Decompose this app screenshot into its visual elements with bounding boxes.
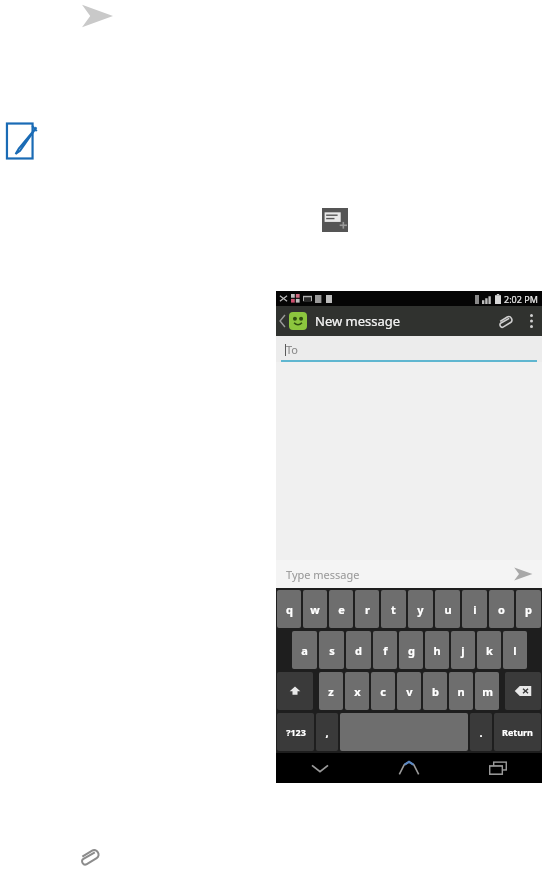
button[interactable]: n	[449, 672, 473, 710]
button[interactable]: Shift	[277, 672, 313, 710]
staticText: s	[329, 643, 335, 658]
staticText: v	[406, 684, 413, 699]
staticText: l	[513, 643, 517, 658]
staticText: n	[457, 684, 465, 699]
button[interactable]: d	[346, 631, 371, 669]
button[interactable]: f	[373, 631, 397, 669]
button[interactable]: Backspace	[505, 672, 541, 710]
button[interactable]: Return	[494, 713, 541, 751]
staticText: ,	[325, 725, 329, 740]
button[interactable]: Hide keyboard	[276, 753, 364, 783]
button[interactable]: y	[408, 590, 433, 628]
staticText: z	[328, 684, 334, 699]
button[interactable]: More options	[521, 308, 542, 334]
staticText: m	[482, 684, 493, 699]
button[interactable]: g	[399, 631, 423, 669]
button[interactable]: p	[516, 590, 541, 628]
staticText: New message	[315, 312, 401, 330]
button[interactable]: Attach	[489, 307, 521, 335]
button[interactable]: Home	[364, 753, 453, 783]
staticText: y	[417, 602, 424, 617]
staticText: j	[461, 643, 465, 658]
button[interactable]: j	[451, 631, 475, 669]
staticText: a	[301, 643, 308, 658]
button[interactable]: c	[371, 672, 395, 710]
button[interactable]: z	[319, 672, 343, 710]
button[interactable]: t	[381, 590, 406, 628]
button[interactable]: o	[489, 590, 514, 628]
staticText: c	[380, 684, 386, 699]
staticText: To	[286, 342, 299, 357]
button[interactable]: r	[355, 590, 379, 628]
staticText: Type message	[286, 567, 360, 582]
button[interactable]: Recent apps	[453, 753, 542, 783]
button[interactable]: b	[423, 672, 447, 710]
button[interactable]: Send	[504, 561, 542, 587]
button[interactable]: Back	[276, 308, 309, 334]
staticText: o	[498, 602, 505, 617]
button[interactable]: .	[470, 713, 492, 751]
button[interactable]: ?123	[277, 713, 314, 751]
button[interactable]: k	[477, 631, 501, 669]
staticText: f	[383, 643, 388, 658]
button[interactable]: Type message	[286, 567, 498, 582]
button[interactable]: l	[503, 631, 527, 669]
button[interactable]: v	[397, 672, 421, 710]
staticText: e	[338, 602, 345, 617]
staticText: .	[479, 725, 483, 740]
button[interactable]: To	[276, 336, 542, 362]
button[interactable]: q	[277, 590, 301, 628]
staticText: h	[433, 643, 441, 658]
staticText: w	[310, 602, 320, 617]
staticText: i	[473, 602, 477, 617]
staticText: d	[355, 643, 362, 658]
staticText: k	[486, 643, 493, 658]
staticText: q	[286, 602, 293, 617]
staticText: p	[525, 602, 532, 617]
staticText: Return	[502, 726, 533, 738]
staticText: u	[444, 602, 452, 617]
button[interactable]: ,	[316, 713, 338, 751]
button[interactable]: h	[425, 631, 449, 669]
button[interactable]: i	[462, 590, 487, 628]
staticText: x	[354, 684, 361, 699]
staticText: t	[391, 602, 396, 617]
button[interactable]: u	[435, 590, 460, 628]
button[interactable]: x	[345, 672, 369, 710]
staticText: 2:02 PM	[504, 293, 538, 305]
button[interactable]: m	[475, 672, 499, 710]
staticText: b	[432, 684, 439, 699]
button[interactable]: w	[303, 590, 327, 628]
button[interactable]: s	[319, 631, 344, 669]
button[interactable]: e	[329, 590, 353, 628]
staticText: ?123	[286, 726, 306, 738]
staticText: g	[408, 643, 415, 658]
staticText: r	[365, 602, 370, 617]
button[interactable]: a	[292, 631, 317, 669]
